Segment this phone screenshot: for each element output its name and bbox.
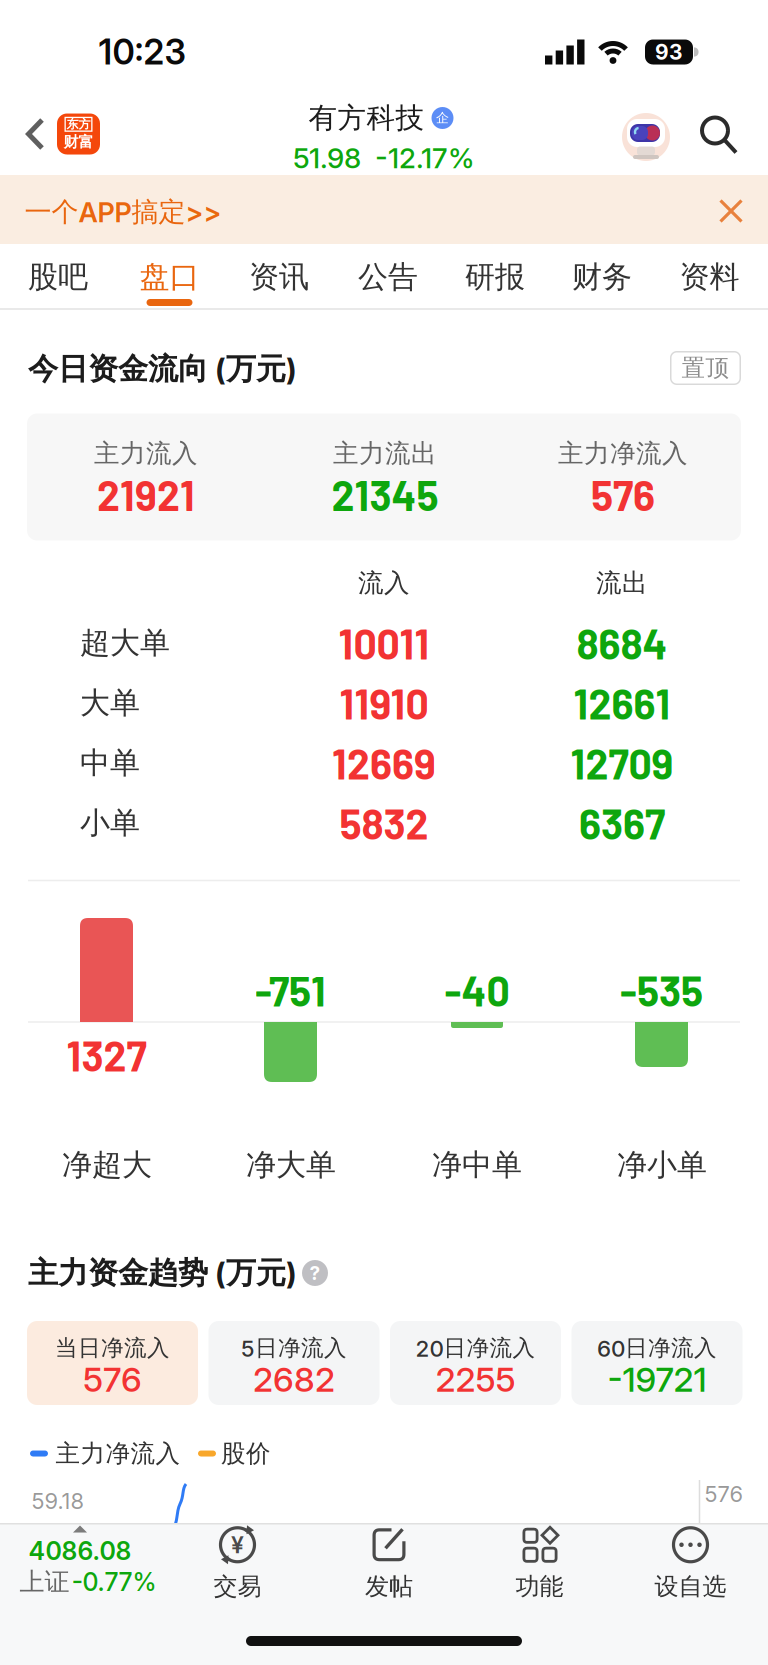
staticText: 主力流入 [94, 438, 198, 469]
staticText: 上证 [19, 1567, 69, 1597]
button[interactable]: 5日净流入 [208, 1321, 379, 1405]
staticText: 东方 [66, 117, 90, 132]
staticText: 1327 [66, 1031, 146, 1079]
staticText: 盘口 [139, 259, 199, 295]
staticText: 设自选 [654, 1572, 726, 1601]
button[interactable]: 智能助手 [622, 113, 670, 161]
button[interactable]: 研报 [445, 246, 545, 308]
button[interactable]: 上证指数 [0, 1523, 176, 1603]
button[interactable]: 60日净流入 [571, 1321, 742, 1405]
staticText: 60日净流入 [597, 1334, 717, 1362]
staticText: 10011 [338, 619, 429, 667]
staticText: -751 [255, 966, 326, 1014]
staticText: 一个APP搞定>> [24, 195, 221, 229]
button[interactable]: Close [720, 200, 741, 221]
staticText: 576 [591, 470, 655, 518]
button[interactable]: 一个APP搞定>> [24, 195, 221, 229]
button[interactable]: 资讯 [229, 246, 329, 308]
button[interactable]: 财务 [552, 246, 652, 308]
staticText: ? [309, 1262, 320, 1284]
staticText: 21921 [97, 470, 195, 518]
button[interactable]: 东方财富 [57, 113, 100, 154]
staticText: 净小单 [617, 1147, 707, 1183]
staticText: 资讯 [249, 259, 309, 295]
staticText: 12669 [332, 739, 436, 787]
staticText: 当日净流入 [55, 1334, 170, 1362]
staticText: 股价 [221, 1438, 271, 1469]
staticText: -535 [620, 966, 703, 1014]
staticText: 51.98 -12.17% [293, 141, 475, 174]
staticText: 公告 [358, 259, 418, 295]
staticText: 2682 [253, 1359, 335, 1399]
staticText: 6367 [579, 799, 665, 847]
staticText: 大单 [80, 685, 140, 721]
staticText: -0.77% [71, 1567, 156, 1597]
staticText: -19721 [607, 1359, 706, 1399]
staticText: 流出 [596, 567, 648, 599]
staticText: 功能 [515, 1572, 563, 1601]
staticText: 小单 [80, 805, 140, 841]
button[interactable]: 当日净流入 [27, 1321, 198, 1405]
staticText: 发帖 [365, 1572, 413, 1601]
staticText: 流入 [358, 567, 410, 599]
staticText: 2255 [435, 1359, 515, 1399]
staticText: 93 [655, 40, 683, 64]
staticText: 12661 [573, 679, 670, 727]
button[interactable]: 设自选 [654, 1525, 726, 1601]
staticText: 10:23 [98, 32, 185, 72]
button[interactable]: 置顶 [670, 351, 741, 385]
staticText: 主力净流入 [55, 1438, 180, 1469]
staticText: 5日净流入 [241, 1334, 347, 1362]
button[interactable]: 盘口 [119, 246, 219, 308]
staticText: 主力流出 [333, 438, 437, 469]
staticText: 财务 [572, 259, 632, 295]
button[interactable]: 20日净流入 [390, 1321, 561, 1405]
staticText: 20日净流入 [415, 1334, 535, 1362]
button[interactable]: 帮助 [302, 1260, 328, 1286]
staticText: 4086.08 [28, 1536, 131, 1566]
staticText: 5832 [339, 799, 428, 847]
staticText: 576 [704, 1481, 743, 1507]
staticText: 今日资金流向 (万元) [28, 351, 297, 387]
button[interactable]: 资料 [659, 246, 759, 308]
staticText: 净中单 [432, 1147, 522, 1183]
staticText: -40 [444, 966, 509, 1014]
staticText: 12709 [570, 739, 673, 787]
staticText: 中单 [80, 745, 140, 781]
button[interactable]: 发帖 [365, 1525, 413, 1601]
button[interactable]: Search [700, 115, 738, 154]
button[interactable]: 公告 [338, 246, 438, 308]
staticText: 财富 [63, 133, 93, 151]
staticText: 股吧 [28, 259, 88, 295]
staticText: 11910 [339, 679, 428, 727]
staticText: 主力资金趋势 (万元) [28, 1255, 297, 1291]
staticText: 超大单 [80, 625, 170, 661]
button[interactable]: 功能 [515, 1525, 563, 1601]
staticText: 置顶 [681, 354, 729, 382]
staticText: 企 [436, 110, 449, 126]
staticText: 交易 [213, 1572, 261, 1601]
staticText: 576 [83, 1359, 142, 1399]
staticText: 主力净流入 [558, 438, 688, 469]
staticText: 净大单 [246, 1147, 336, 1183]
button[interactable]: Back [26, 117, 44, 150]
staticText: 净超大 [62, 1147, 152, 1183]
staticText: 资料 [679, 259, 739, 295]
staticText: 8684 [576, 619, 667, 667]
button[interactable]: ¥ [213, 1525, 261, 1601]
button[interactable]: 股吧 [8, 246, 108, 308]
staticText: 59.18 [31, 1488, 84, 1514]
staticText: 有方科技 [308, 100, 424, 135]
staticText: 21345 [331, 470, 438, 518]
staticText: 研报 [465, 259, 525, 295]
staticText: ¥ [231, 1531, 244, 1558]
